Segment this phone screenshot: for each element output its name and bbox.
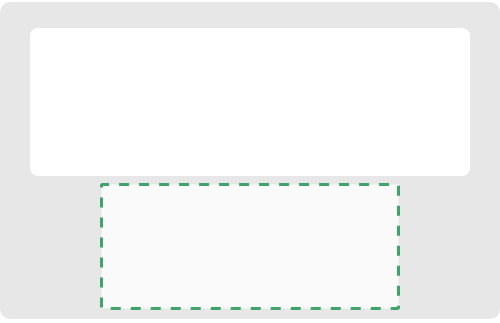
button[interactable]: Drop zone — [100, 183, 400, 310]
